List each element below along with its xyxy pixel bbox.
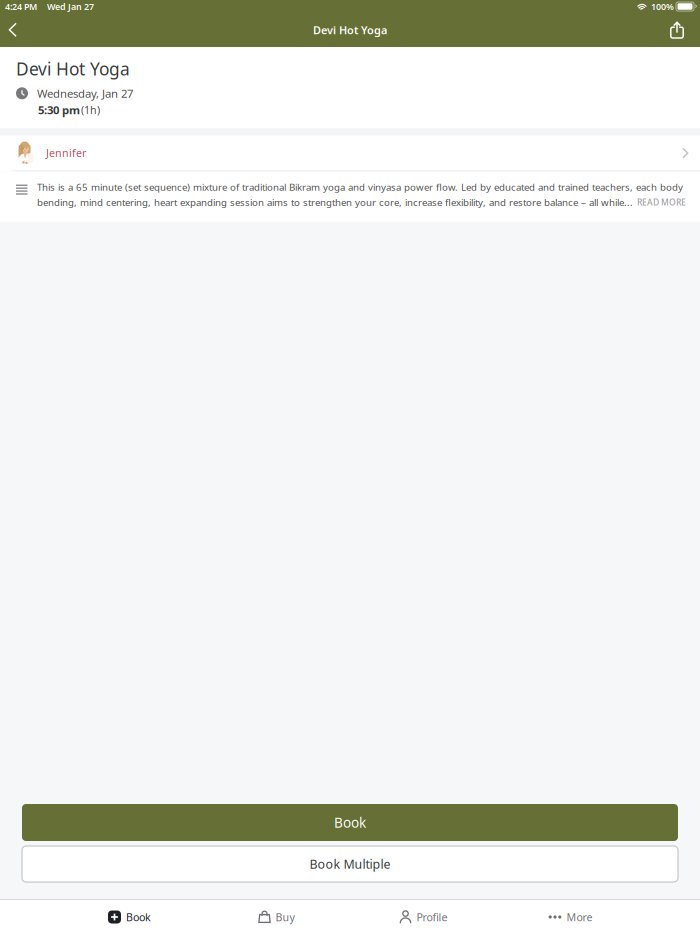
- button[interactable]: Share: [661, 13, 693, 47]
- button[interactable]: Book Multiple: [22, 846, 678, 882]
- button[interactable]: Book: [22, 804, 678, 841]
- button[interactable]: More: [539, 900, 601, 934]
- staticText: 5:30 pm: [38, 102, 80, 117]
- staticText: Devi Hot Yoga: [16, 57, 130, 81]
- button[interactable]: Profile: [392, 900, 454, 934]
- staticText: Jennifer: [46, 146, 86, 160]
- staticText: Book: [126, 910, 151, 924]
- staticText: Book Multiple: [309, 856, 390, 872]
- staticText: Devi Hot Yoga: [313, 23, 387, 37]
- staticText: (1h): [81, 102, 100, 117]
- button[interactable]: READ MORE: [633, 196, 686, 208]
- staticText: Wed Jan 27: [47, 0, 94, 13]
- button[interactable]: Book: [98, 900, 160, 934]
- button[interactable]: Buy: [245, 900, 307, 934]
- button[interactable]: Jennifer: [0, 135, 700, 171]
- staticText: Buy: [275, 910, 294, 924]
- staticText: More: [566, 910, 592, 924]
- staticText: Wednesday, Jan 27: [37, 86, 133, 101]
- staticText: Profile: [416, 910, 447, 924]
- staticText: READ MORE: [637, 196, 686, 208]
- staticText: bending, mind centering, heart expanding…: [37, 196, 633, 209]
- button[interactable]: Back: [0, 13, 26, 47]
- staticText: Book: [334, 813, 366, 832]
- staticText: 4:24 PM: [5, 0, 37, 13]
- staticText: 100%: [651, 0, 674, 13]
- staticText: This is a 65 minute (set sequence) mixtu…: [37, 180, 683, 194]
